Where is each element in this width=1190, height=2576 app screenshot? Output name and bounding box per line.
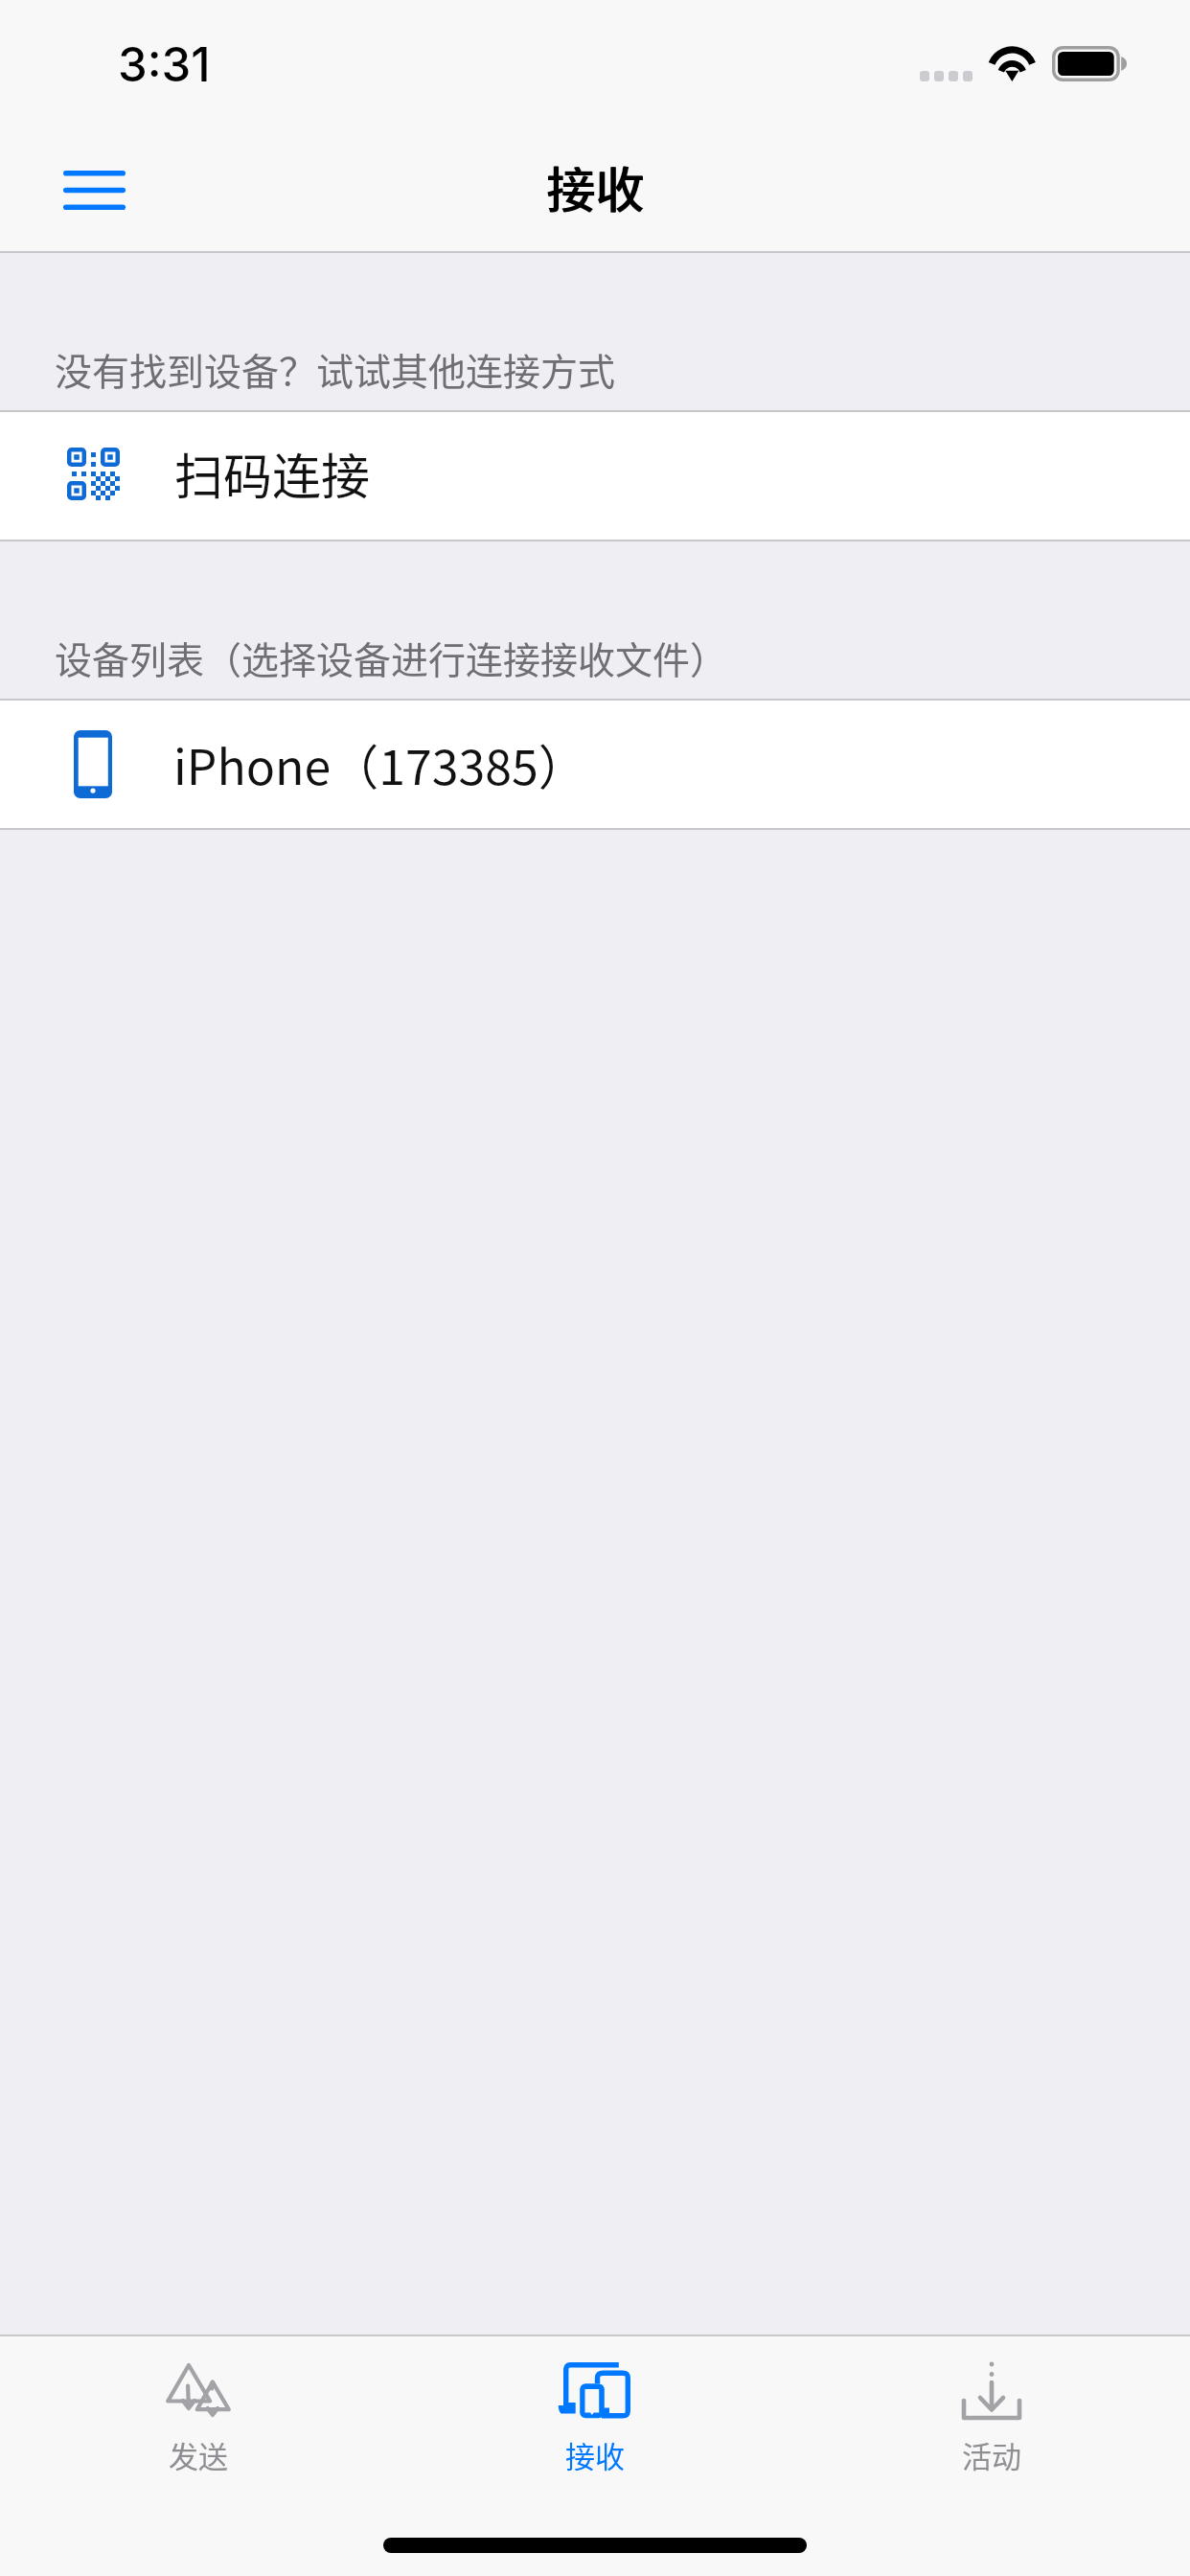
staticText: 没有找到设备？试试其他连接方式 [55,342,616,396]
staticText: 发送 [169,2433,228,2476]
button[interactable]: Receive [397,2336,793,2490]
staticText: 3:31 [118,36,211,93]
button[interactable]: 扫码连接 [0,412,1190,541]
staticText: 设备列表（选择设备进行连接接收文件） [55,631,728,684]
button[interactable]: Activity [793,2336,1190,2490]
button[interactable]: Send [0,2336,397,2490]
button[interactable]: iPhone（173385） [0,701,1190,830]
staticText: iPhone（173385） [173,729,586,798]
staticText: 接收 [565,2433,625,2476]
staticText: 接收 [546,151,645,222]
staticText: 扫码连接 [174,438,371,509]
button[interactable]: Open navigation menu [36,140,151,240]
staticText: 接收 [547,151,646,222]
staticText: 活动 [962,2433,1021,2476]
